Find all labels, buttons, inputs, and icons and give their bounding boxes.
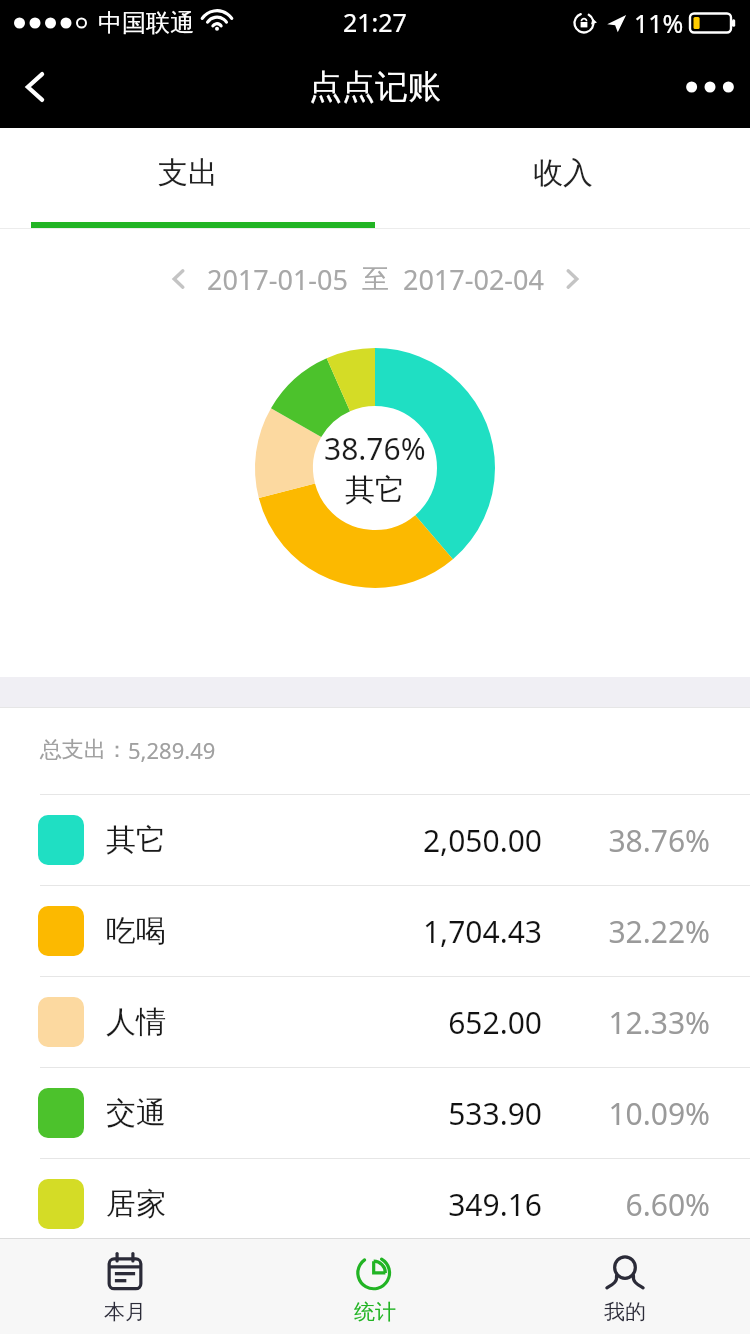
staticText: 至 — [362, 262, 389, 296]
staticText: 2,050.00 — [362, 820, 542, 861]
staticText: 12.33% — [560, 1002, 710, 1043]
button[interactable]: 居家 — [0, 1159, 750, 1249]
staticText: 11% — [634, 6, 684, 40]
button[interactable]: More options — [670, 47, 750, 127]
staticText: 中国联通 — [98, 8, 194, 38]
staticText: 652.00 — [362, 1002, 542, 1043]
staticText: 38.76% — [560, 820, 710, 861]
button[interactable]: 我的 — [500, 1239, 750, 1334]
button[interactable]: 收入 — [375, 128, 750, 229]
staticText: 2017-01-05 — [207, 261, 348, 298]
staticText: 349.16 — [362, 1184, 542, 1225]
staticText: 吃喝 — [106, 912, 166, 950]
staticText: 10.09% — [560, 1093, 710, 1134]
staticText: 6.60% — [560, 1184, 710, 1225]
staticText: 收入 — [533, 154, 593, 192]
button[interactable]: 人情 — [0, 977, 750, 1067]
staticText: 人情 — [106, 1003, 166, 1041]
staticText: 32.22% — [560, 911, 710, 952]
staticText: 38.76% — [324, 428, 426, 469]
staticText: 总支出： — [40, 736, 128, 764]
button[interactable]: 吃喝 — [0, 886, 750, 976]
staticText: 21:27 — [343, 5, 407, 39]
staticText: 点点记账 — [309, 66, 441, 108]
staticText: 支出 — [158, 154, 218, 192]
button[interactable]: Previous period — [157, 257, 201, 301]
staticText: 5,289.49 — [128, 735, 216, 765]
button[interactable]: 统计 — [250, 1239, 500, 1334]
staticText: 我的 — [604, 1299, 646, 1325]
button[interactable]: 支出 — [0, 128, 375, 229]
button[interactable]: 本月 — [0, 1239, 250, 1334]
staticText: 2017-02-04 — [403, 261, 544, 298]
button[interactable]: 交通 — [0, 1068, 750, 1158]
staticText: 533.90 — [362, 1093, 542, 1134]
button[interactable]: Back — [0, 51, 72, 123]
staticText: 本月 — [104, 1299, 146, 1325]
staticText: 统计 — [354, 1299, 396, 1325]
staticText: 其它 — [345, 471, 405, 509]
staticText: 其它 — [106, 821, 166, 859]
staticText: 1,704.43 — [362, 911, 542, 952]
staticText: 交通 — [106, 1094, 166, 1132]
staticText: 居家 — [106, 1185, 166, 1223]
button[interactable]: Next period — [550, 257, 594, 301]
button[interactable]: 其它 — [0, 795, 750, 885]
